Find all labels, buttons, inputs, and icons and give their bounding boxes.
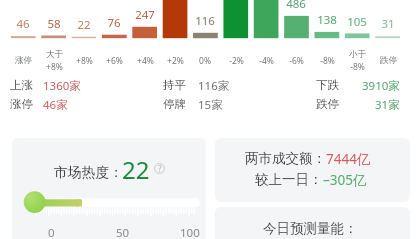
staticText: -8% <box>350 61 365 73</box>
staticText: +8% <box>46 61 63 73</box>
staticText: 105 <box>347 14 367 30</box>
staticText: 76 <box>107 15 121 31</box>
staticText: 7444亿 <box>326 150 371 168</box>
staticText: 大于 <box>46 49 63 60</box>
staticText: 跌停 <box>380 55 397 66</box>
staticText: 1360家 <box>43 78 81 91</box>
staticText: 涨停 <box>15 55 32 66</box>
staticText: 46家 <box>43 97 68 110</box>
staticText: -4% <box>259 55 274 67</box>
staticText: 31 <box>381 16 395 32</box>
button[interactable]: 停牌 <box>163 97 263 110</box>
staticText: 0 <box>48 225 55 239</box>
button[interactable]: 下跌 <box>316 78 400 91</box>
staticText: 较上一日： <box>255 171 323 188</box>
staticText: 22 <box>77 17 91 33</box>
staticText: -6% <box>289 55 304 67</box>
staticText: 跌停 <box>316 97 339 110</box>
button[interactable]: 今日预测量能： <box>215 207 410 239</box>
staticText: 3910家 <box>362 78 400 91</box>
staticText: 31家 <box>375 97 400 110</box>
staticText: 247 <box>135 7 155 23</box>
staticText: 116 <box>195 13 215 29</box>
staticText: –305亿 <box>323 171 367 189</box>
staticText: -2% <box>229 55 244 67</box>
button[interactable]: 涨停 <box>10 97 110 110</box>
staticText: 46 <box>16 16 30 32</box>
staticText: +2% <box>167 55 184 67</box>
button[interactable]: 市场热度： <box>12 138 206 239</box>
button[interactable]: 上涨 <box>10 78 110 91</box>
staticText: 停牌 <box>163 97 186 110</box>
staticText: ? <box>158 163 162 174</box>
staticText: 下跌 <box>316 78 339 91</box>
staticText: 今日预测量能： <box>263 220 358 237</box>
staticText: 58 <box>47 16 61 32</box>
staticText: 116家 <box>198 78 230 91</box>
staticText: +6% <box>106 55 123 67</box>
staticText: 100 <box>180 225 200 239</box>
staticText: 22 <box>122 153 150 186</box>
staticText: 15家 <box>198 97 223 110</box>
staticText: +4% <box>137 55 154 67</box>
staticText: 50 <box>116 225 130 239</box>
staticText: 0% <box>199 55 211 67</box>
staticText: 486 <box>286 0 306 12</box>
staticText: 138 <box>317 12 337 28</box>
button[interactable]: 持平 <box>163 78 263 91</box>
staticText: 小于 <box>349 49 366 60</box>
staticText: 市场热度： <box>54 164 123 181</box>
staticText: 持平 <box>163 78 186 91</box>
staticText: +8% <box>76 55 93 67</box>
staticText: 涨停 <box>10 97 33 110</box>
staticText: 两市成交额： <box>245 150 326 167</box>
staticText: 上涨 <box>10 78 33 91</box>
button[interactable]: 两市成交额： <box>215 138 410 202</box>
button[interactable]: 跌停 <box>316 97 400 110</box>
staticText: -8% <box>320 55 335 67</box>
